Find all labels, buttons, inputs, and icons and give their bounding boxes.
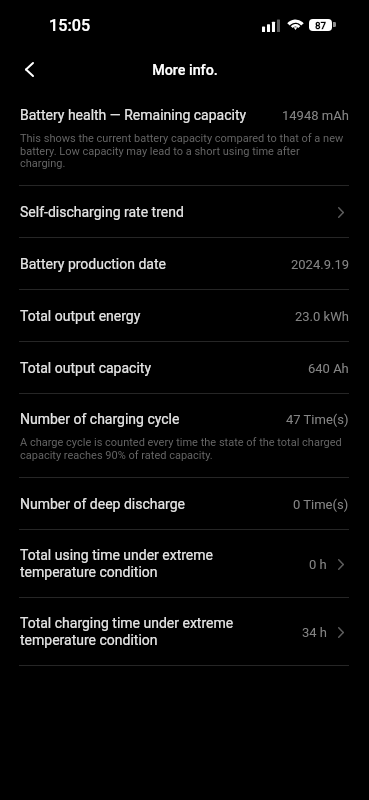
staticText: 23.0 kWh — [295, 309, 349, 324]
button[interactable]: Total using time under extreme temperatu… — [0, 530, 369, 597]
staticText: 47 Time(s) — [286, 412, 349, 427]
staticText: 87 — [315, 20, 327, 31]
staticText: Total using time under extreme temperatu… — [20, 547, 263, 581]
other: Wi-Fi — [287, 19, 304, 31]
staticText: 640 Ah — [308, 361, 349, 376]
button[interactable]: Battery production date — [0, 238, 369, 289]
staticText: 34 h — [302, 625, 327, 640]
button[interactable]: Back — [13, 53, 45, 85]
button[interactable]: Number of charging cycle — [0, 394, 369, 477]
staticText: 2024.9.19 — [291, 257, 349, 272]
button[interactable]: Total output energy — [0, 290, 369, 341]
staticText: 0 h — [309, 557, 327, 572]
staticText: Self-discharging rate trend — [20, 204, 263, 220]
staticText: Battery production date — [20, 256, 263, 272]
button[interactable]: Total output capacity — [0, 342, 369, 393]
staticText: 15:05 — [49, 16, 91, 35]
button[interactable]: Self-discharging rate trend — [0, 186, 369, 237]
staticText: Total charging time under extreme temper… — [20, 615, 263, 649]
staticText: 14948 mAh — [282, 108, 349, 123]
staticText: More info. — [152, 62, 218, 79]
button[interactable]: Total charging time under extreme temper… — [0, 598, 369, 665]
staticText: Total output capacity — [20, 360, 263, 376]
button[interactable]: Number of deep discharge — [0, 478, 369, 529]
staticText: 0 Time(s) — [293, 497, 349, 512]
staticText: Number of charging cycle — [20, 411, 263, 427]
staticText: Total output energy — [20, 308, 263, 324]
staticText: Battery health — Remaining capacity — [20, 107, 263, 123]
button[interactable]: Battery health — Remaining capacity — [0, 90, 369, 185]
staticText: Number of deep discharge — [20, 496, 263, 512]
staticText: This shows the current battery capacity … — [20, 132, 345, 169]
staticText: A charge cycle is counted every time the… — [20, 436, 345, 461]
